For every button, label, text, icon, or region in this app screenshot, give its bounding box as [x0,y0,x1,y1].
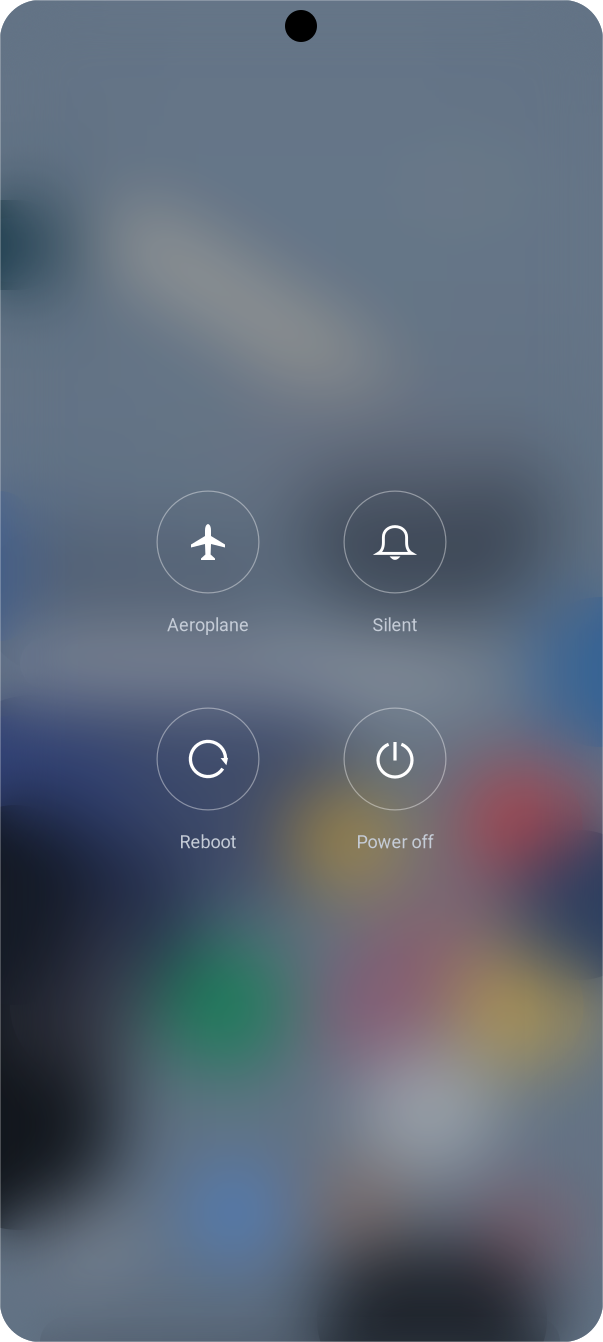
staticText: Power off [356,831,433,853]
button[interactable]: Reboot [118,699,298,879]
staticText: Reboot [179,831,236,853]
button[interactable]: Power off [305,699,485,879]
button[interactable]: Silent [305,482,485,662]
staticText: Silent [372,614,417,636]
button[interactable]: Aeroplane [118,482,298,662]
staticText: Aeroplane [167,614,249,636]
